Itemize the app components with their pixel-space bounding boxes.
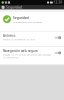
staticText: Proteja su teléfono de los virus xyxy=(3,38,35,41)
staticText: Seguridad xyxy=(13,16,29,20)
staticText: Navegación web segura xyxy=(3,49,38,53)
staticText: Bloquee los sitios web peligrosos para p… xyxy=(3,53,51,59)
button[interactable]: Antivirus xyxy=(0,32,64,46)
staticText: Su dispositivo está protegido xyxy=(13,21,42,23)
staticText: 12:30 xyxy=(54,1,63,4)
staticText: Antivirus xyxy=(3,34,15,37)
button[interactable]: Navegación web segura xyxy=(0,47,64,64)
staticText: Seguridad xyxy=(6,5,22,9)
button[interactable]: Seguridad xyxy=(0,5,64,10)
